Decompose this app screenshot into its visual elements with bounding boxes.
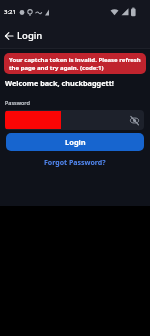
staticText: 3:21 bbox=[4, 8, 16, 16]
button[interactable]: Your captcha token is invalid. Please re… bbox=[4, 53, 146, 74]
staticText: Password bbox=[5, 99, 30, 106]
staticText: Welcome back, chuckbaggett! bbox=[5, 78, 114, 88]
staticText: Your captcha token is invalid. Please re… bbox=[9, 56, 141, 72]
staticText: Forgot Password? bbox=[44, 158, 106, 168]
button[interactable] bbox=[0, 26, 17, 46]
staticText: Login bbox=[65, 137, 86, 147]
staticText: Login bbox=[17, 29, 43, 42]
button[interactable]: Forgot Password? bbox=[0, 158, 150, 168]
button[interactable]: Login bbox=[6, 133, 144, 151]
button[interactable] bbox=[5, 110, 144, 130]
